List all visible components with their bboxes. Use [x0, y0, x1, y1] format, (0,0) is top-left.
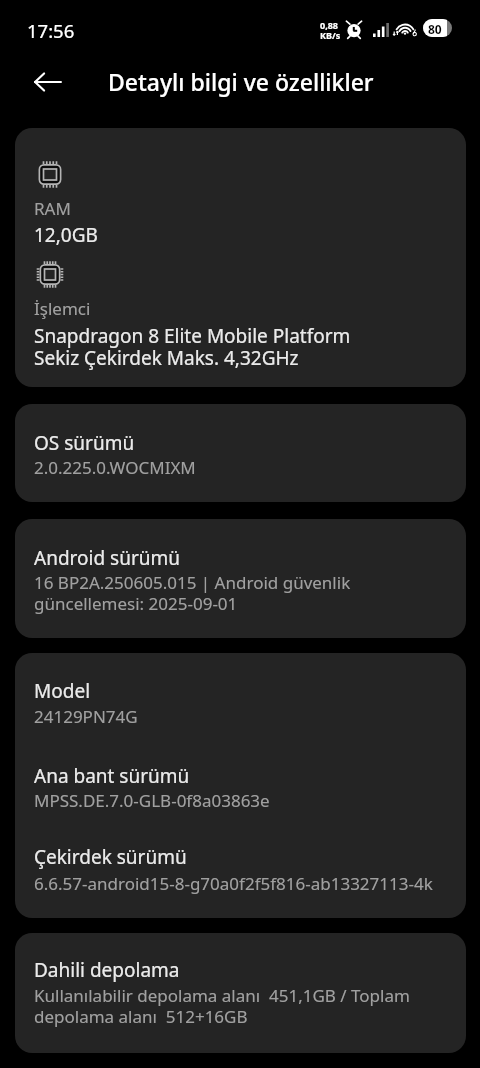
staticText: 12,0GB [34, 224, 98, 246]
button[interactable]: Android sürümü [15, 519, 466, 638]
staticText: İşlemci [34, 299, 91, 320]
staticText: Dahili depolama [34, 959, 180, 981]
staticText: RAM [34, 199, 71, 220]
staticText: Ana bant sürümü [34, 765, 190, 787]
staticText: 0,88 [320, 19, 339, 31]
staticText: 2.0.225.0.WOCMIXM [34, 458, 196, 479]
staticText: MPSS.DE.7.0-GLB-0f8a03863e [34, 791, 270, 812]
button[interactable]: Dahili depolama [15, 933, 466, 1053]
staticText: 24129PN74G [34, 707, 138, 728]
staticText: 16 BP2A.250605.015 | Android güvenlik gü… [34, 573, 351, 615]
staticText: Kullanılabilir depolama alanı 451,1GB / … [34, 986, 410, 1028]
staticText: 17:56 [27, 18, 75, 43]
button[interactable]: Back [24, 58, 72, 106]
staticText: Çekirdek sürümü [34, 846, 187, 868]
staticText: Snapdragon 8 Elite Mobile Platform Sekiz… [34, 325, 351, 369]
button[interactable]: OS sürümü [15, 404, 466, 502]
staticText: KB/s [320, 29, 341, 41]
staticText: Model [34, 680, 91, 702]
staticText: 6.6.57-android15-8-g70a0f2f5f816-ab13327… [34, 874, 433, 895]
staticText: 80 [428, 21, 442, 37]
button[interactable]: RAM [15, 128, 466, 387]
staticText: Detaylı bilgi ve özellikler [108, 66, 374, 97]
staticText: Android sürümü [34, 547, 180, 569]
button[interactable]: Model [15, 653, 466, 918]
staticText: OS sürümü [34, 432, 135, 454]
